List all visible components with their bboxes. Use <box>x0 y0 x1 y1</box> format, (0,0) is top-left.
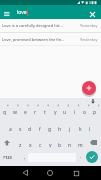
staticText: love <box>17 9 27 16</box>
button[interactable] <box>17 166 33 180</box>
staticText: b <box>58 142 62 149</box>
staticText: x <box>29 142 32 149</box>
staticText: u <box>63 109 67 116</box>
button[interactable]: r <box>30 105 40 120</box>
staticText: l <box>89 126 91 133</box>
button[interactable]: y <box>50 105 60 120</box>
button[interactable]: o <box>80 105 90 120</box>
staticText: q <box>3 109 7 116</box>
staticText: o <box>83 109 87 116</box>
button[interactable]: v <box>45 138 55 153</box>
button[interactable]: Love is a carefully designed list... <box>0 19 101 32</box>
button[interactable]: l <box>85 122 95 137</box>
staticText: t <box>44 109 46 116</box>
button[interactable]: j <box>65 122 75 137</box>
button[interactable]: z <box>15 138 25 153</box>
button[interactable]: h <box>55 122 65 137</box>
button[interactable]: p <box>90 105 100 120</box>
button[interactable]: d <box>25 122 35 137</box>
staticText: p <box>93 109 97 116</box>
staticText: i <box>74 109 76 116</box>
button[interactable]: g <box>45 122 55 137</box>
staticText: h <box>58 126 62 133</box>
staticText: j <box>69 126 71 133</box>
staticText: e <box>24 109 27 116</box>
staticText: Love, promised between the fin... <box>2 37 65 42</box>
staticText: n <box>68 142 72 149</box>
staticText: z <box>19 142 22 149</box>
staticText: g <box>48 126 52 133</box>
button[interactable] <box>68 166 84 180</box>
staticText: r <box>34 109 37 116</box>
button[interactable]: u <box>60 105 70 120</box>
staticText: Yesterday <box>80 23 98 28</box>
button[interactable]: w <box>10 105 20 120</box>
button[interactable]: i <box>70 105 80 120</box>
staticText: . <box>80 153 82 160</box>
staticText: , <box>24 154 26 161</box>
staticText: m <box>78 142 83 149</box>
staticText: v <box>49 142 52 149</box>
button[interactable]: c <box>35 138 45 153</box>
button[interactable]: f <box>35 122 45 137</box>
button[interactable]: m <box>75 138 85 153</box>
staticText: Love is a carefully designed list... <box>2 23 64 28</box>
staticText: s <box>19 126 22 133</box>
button[interactable] <box>82 81 96 95</box>
button[interactable]: n <box>65 138 75 153</box>
button[interactable]: t <box>40 105 50 120</box>
button[interactable]: k <box>75 122 85 137</box>
button[interactable] <box>42 166 58 180</box>
button[interactable]: s <box>15 122 25 137</box>
staticText: Yesterday <box>80 37 98 42</box>
button[interactable]: e <box>20 105 30 120</box>
button[interactable] <box>87 9 98 19</box>
button[interactable]: q <box>0 105 10 120</box>
button[interactable]: Love, promised between the fin... <box>0 33 101 46</box>
button[interactable]: x <box>25 138 35 153</box>
staticText: w <box>13 109 17 116</box>
staticText: ?123 <box>3 155 12 160</box>
staticText: a <box>9 126 12 133</box>
button[interactable] <box>86 151 98 163</box>
staticText: d <box>28 126 32 133</box>
staticText: c <box>39 142 42 149</box>
staticText: k <box>79 126 82 133</box>
button[interactable] <box>2 9 12 18</box>
staticText: f <box>39 126 41 133</box>
button[interactable]: a <box>5 122 15 137</box>
button[interactable]: b <box>55 138 65 153</box>
staticText: y <box>54 109 57 116</box>
